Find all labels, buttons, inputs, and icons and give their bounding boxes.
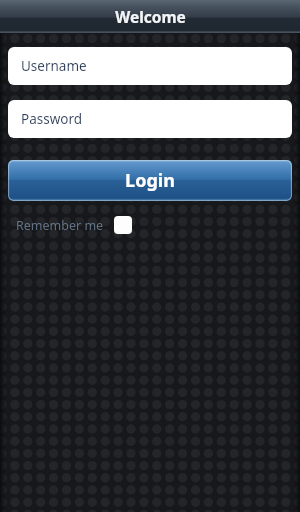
button[interactable]: Login (8, 160, 292, 201)
button[interactable]: Remember me (16, 216, 132, 234)
staticText: Welcome (115, 6, 186, 27)
other: Remember me checkbox (114, 216, 132, 234)
button[interactable]: Password (8, 100, 292, 138)
staticText: Login (125, 168, 175, 193)
button[interactable]: Username (8, 47, 292, 85)
staticText: Password (21, 110, 83, 128)
staticText: Remember me (16, 217, 104, 234)
staticText: Username (21, 57, 87, 75)
